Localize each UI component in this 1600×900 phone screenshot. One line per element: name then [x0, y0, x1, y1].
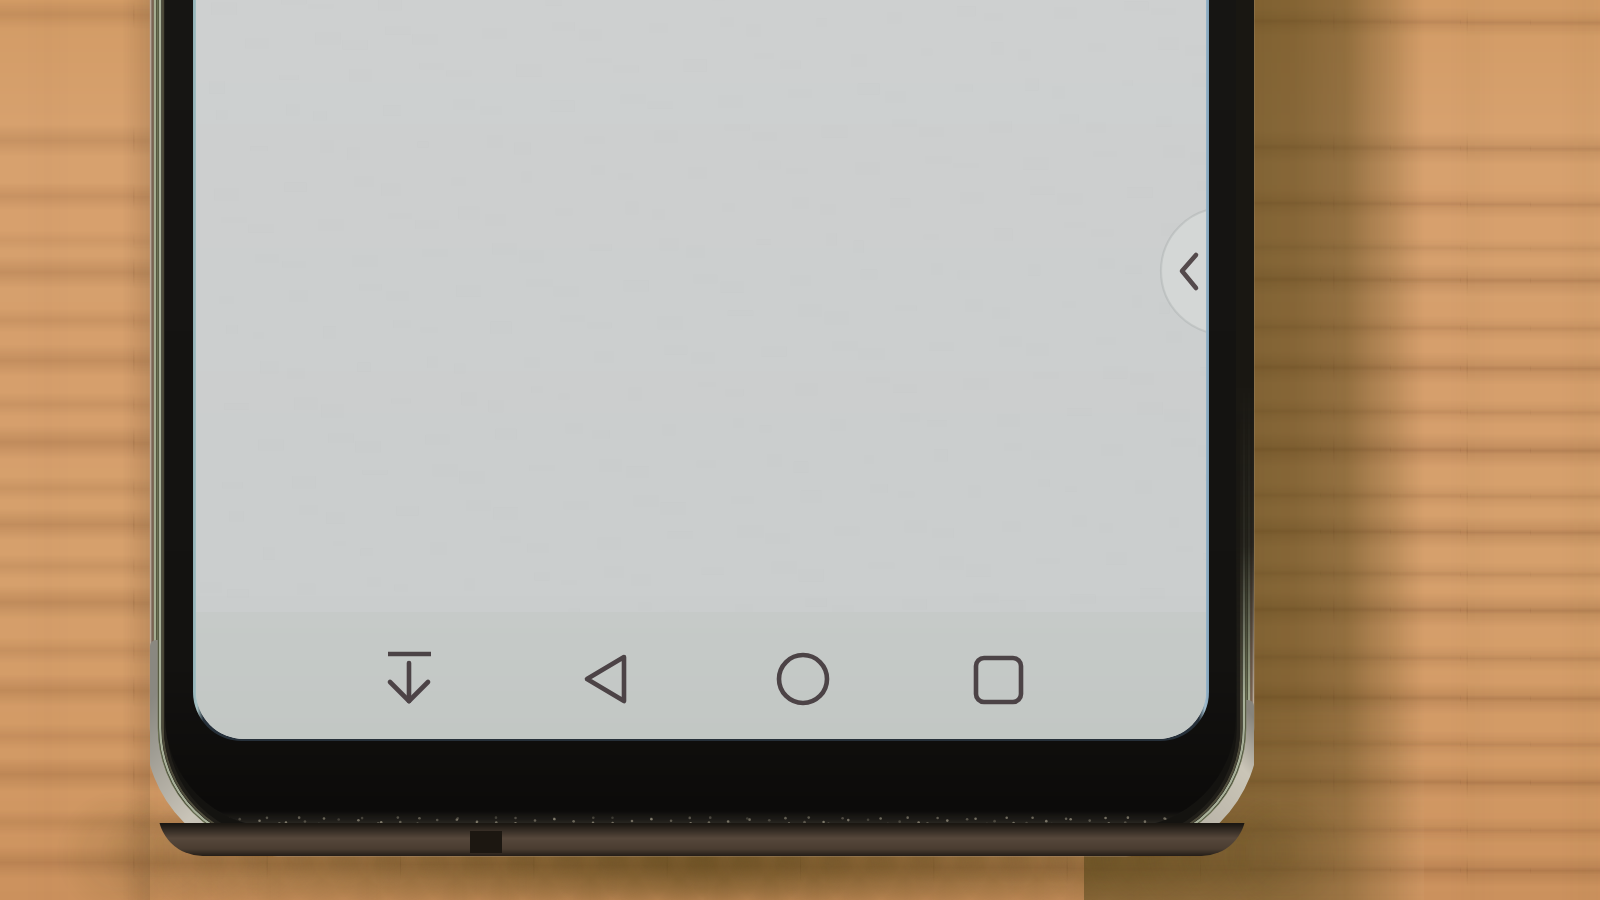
button[interactable]: Back [546, 612, 674, 739]
button[interactable]: Hide navigation bar [345, 612, 473, 739]
button[interactable]: Recent apps [934, 612, 1062, 739]
button[interactable]: Back gesture [1161, 208, 1206, 334]
button[interactable]: Home [739, 612, 867, 739]
